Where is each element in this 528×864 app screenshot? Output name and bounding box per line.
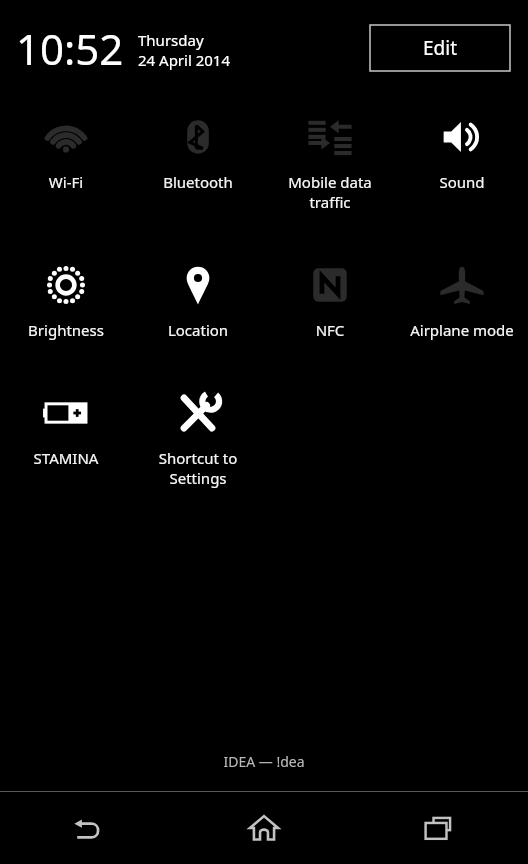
staticText: NFC <box>264 320 396 340</box>
staticText: STAMINA <box>0 448 132 468</box>
staticText: Mobile data traffic <box>264 172 396 212</box>
staticText: Edit <box>423 35 458 61</box>
staticText: Bluetooth <box>132 172 264 192</box>
button[interactable]: Airplane mode <box>396 244 528 346</box>
button[interactable]: Bluetooth <box>132 96 264 198</box>
button[interactable]: Brightness <box>0 244 132 346</box>
staticText: Shortcut to Settings <box>132 448 264 488</box>
button[interactable]: NFC <box>264 244 396 346</box>
button[interactable]: Home <box>176 792 352 864</box>
button[interactable]: STAMINA <box>0 372 132 474</box>
button[interactable]: Edit <box>370 25 510 71</box>
button[interactable]: Recents <box>352 792 528 864</box>
staticText: Location <box>132 320 264 340</box>
staticText: IDEA — !dea <box>0 752 528 771</box>
staticText: Airplane mode <box>396 320 528 340</box>
button[interactable]: Mobile data traffic <box>264 96 396 218</box>
button[interactable]: Shortcut to Settings <box>132 372 264 494</box>
staticText: Wi-Fi <box>0 172 132 192</box>
button[interactable]: Location <box>132 244 264 346</box>
button[interactable]: Wi-Fi <box>0 96 132 198</box>
staticText: 10:52 <box>16 20 124 77</box>
staticText: 24 April 2014 <box>138 50 231 70</box>
staticText: Sound <box>396 172 528 192</box>
button[interactable]: Back <box>0 792 176 864</box>
button[interactable]: Sound <box>396 96 528 198</box>
staticText: Brightness <box>0 320 132 340</box>
staticText: Thursday <box>138 30 204 50</box>
